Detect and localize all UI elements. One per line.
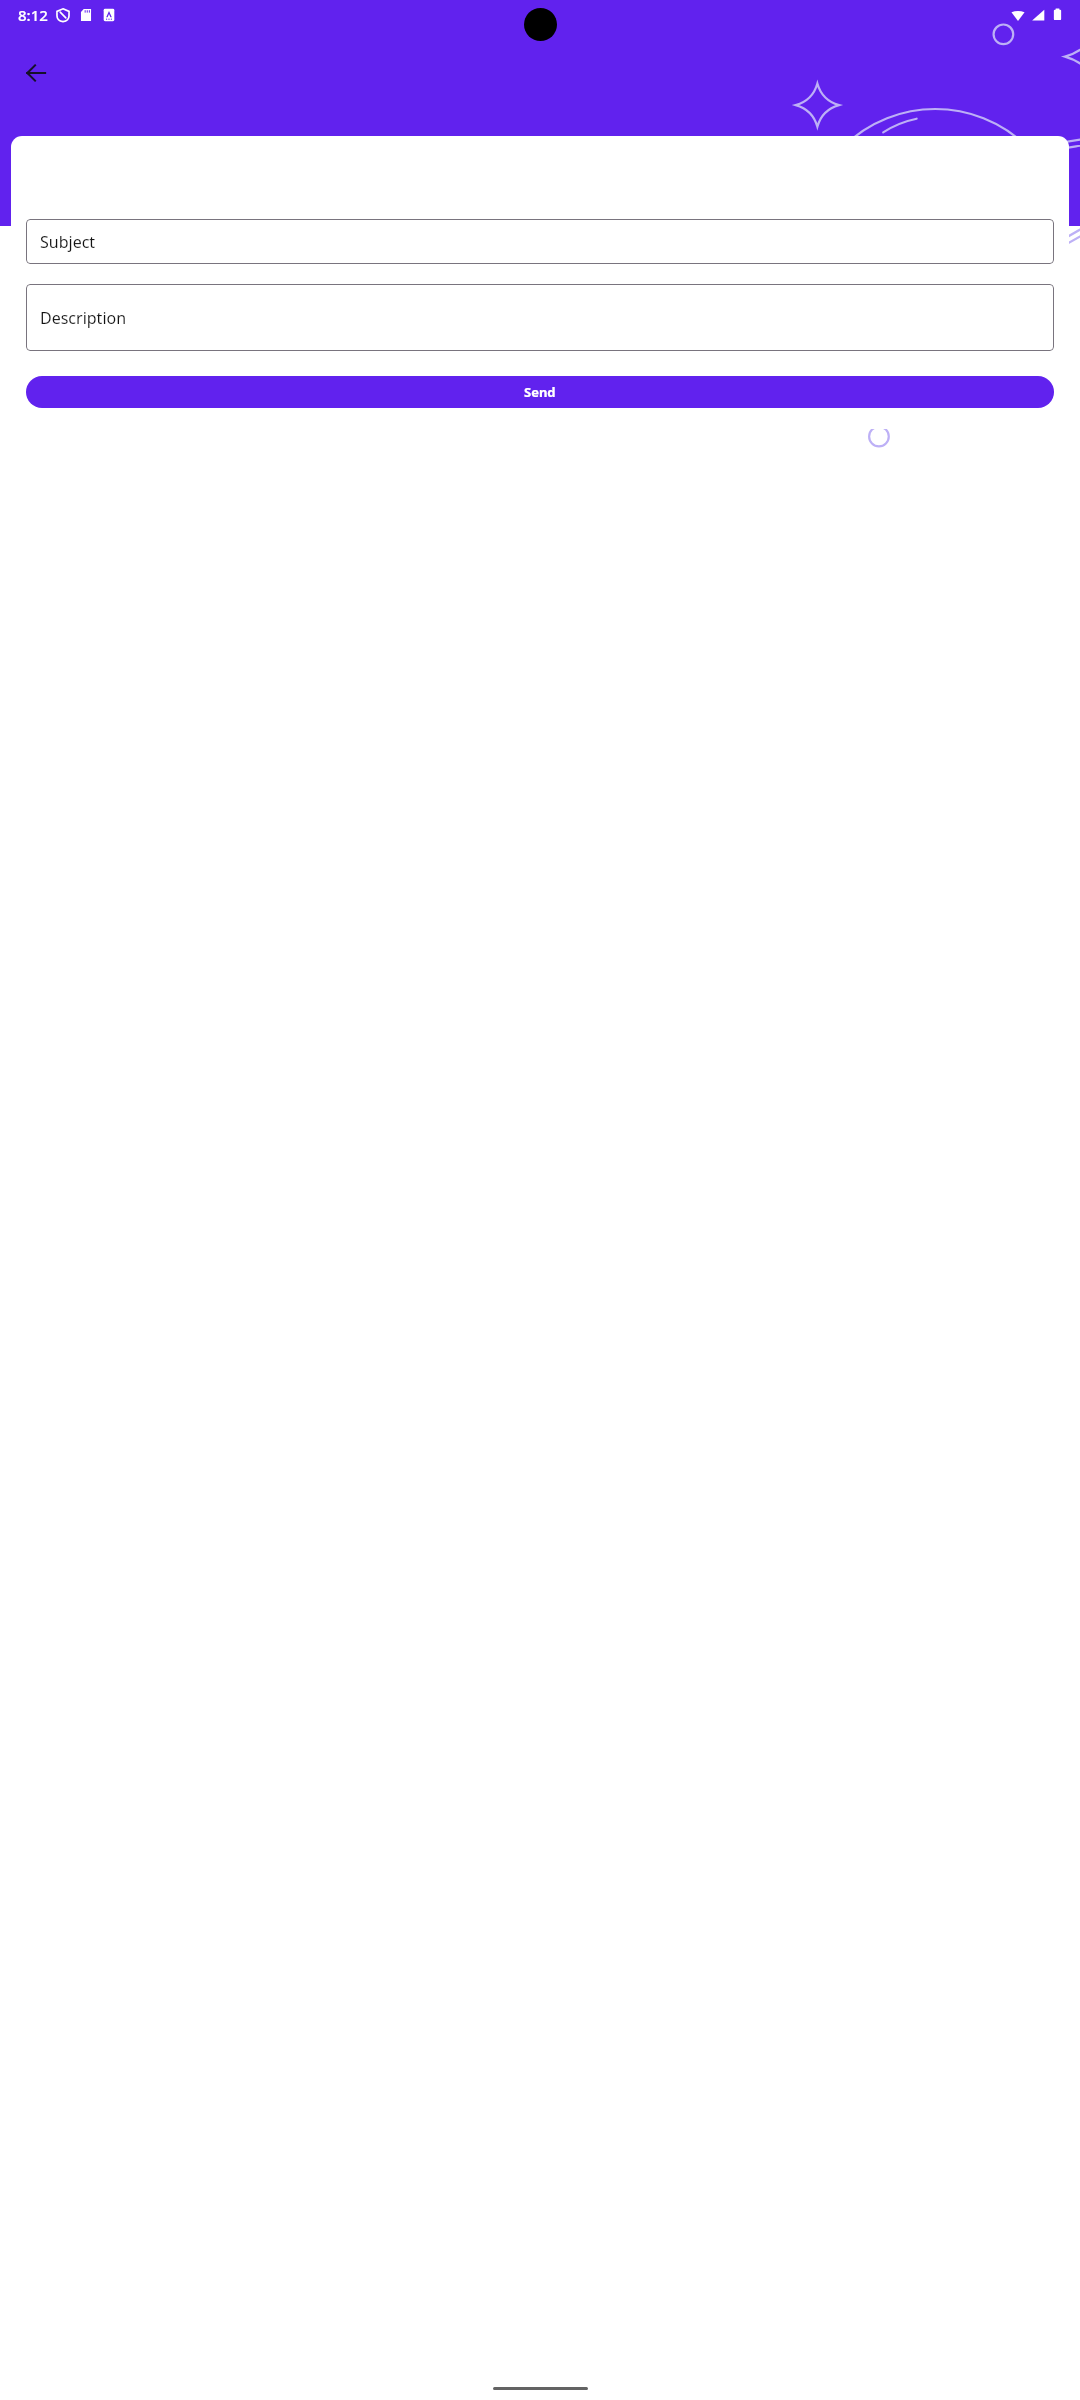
button[interactable]: Send <box>26 376 1054 408</box>
button[interactable]: Subject <box>26 219 1054 264</box>
staticText: 8:12 <box>18 5 48 25</box>
staticText: Description <box>40 307 127 329</box>
button[interactable]: Back <box>13 50 59 96</box>
staticText: Subject <box>40 231 96 253</box>
staticText: Send <box>524 383 556 401</box>
button[interactable]: Description <box>26 284 1054 351</box>
